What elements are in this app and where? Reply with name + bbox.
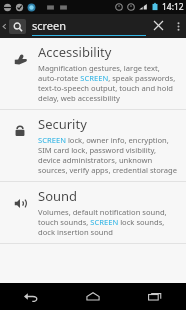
staticText: Sound bbox=[38, 187, 78, 205]
button[interactable]: Back bbox=[0, 283, 62, 310]
button[interactable]: Clear query bbox=[146, 14, 170, 38]
button[interactable]: Recent apps bbox=[124, 283, 186, 310]
button[interactable]: screen bbox=[32, 14, 146, 38]
staticText: screen bbox=[32, 18, 67, 33]
button[interactable]: Sound bbox=[0, 182, 186, 243]
button[interactable]: More options bbox=[170, 14, 186, 38]
button[interactable]: Search bbox=[9, 19, 26, 34]
staticText: Magnification gestures, large text, auto… bbox=[38, 63, 178, 103]
staticText: 14:12 bbox=[162, 1, 184, 13]
staticText: Security bbox=[38, 115, 87, 133]
staticText: SCREEN lock, owner info, encryption, SIM… bbox=[38, 135, 178, 175]
button[interactable]: Navigate up bbox=[0, 14, 9, 38]
button[interactable]: Security bbox=[0, 110, 186, 181]
button[interactable]: Home bbox=[62, 283, 124, 310]
staticText: Volumes, default notification sound, tou… bbox=[38, 207, 178, 237]
button[interactable]: Accessibility bbox=[0, 38, 186, 109]
staticText: Accessibility bbox=[38, 43, 112, 61]
